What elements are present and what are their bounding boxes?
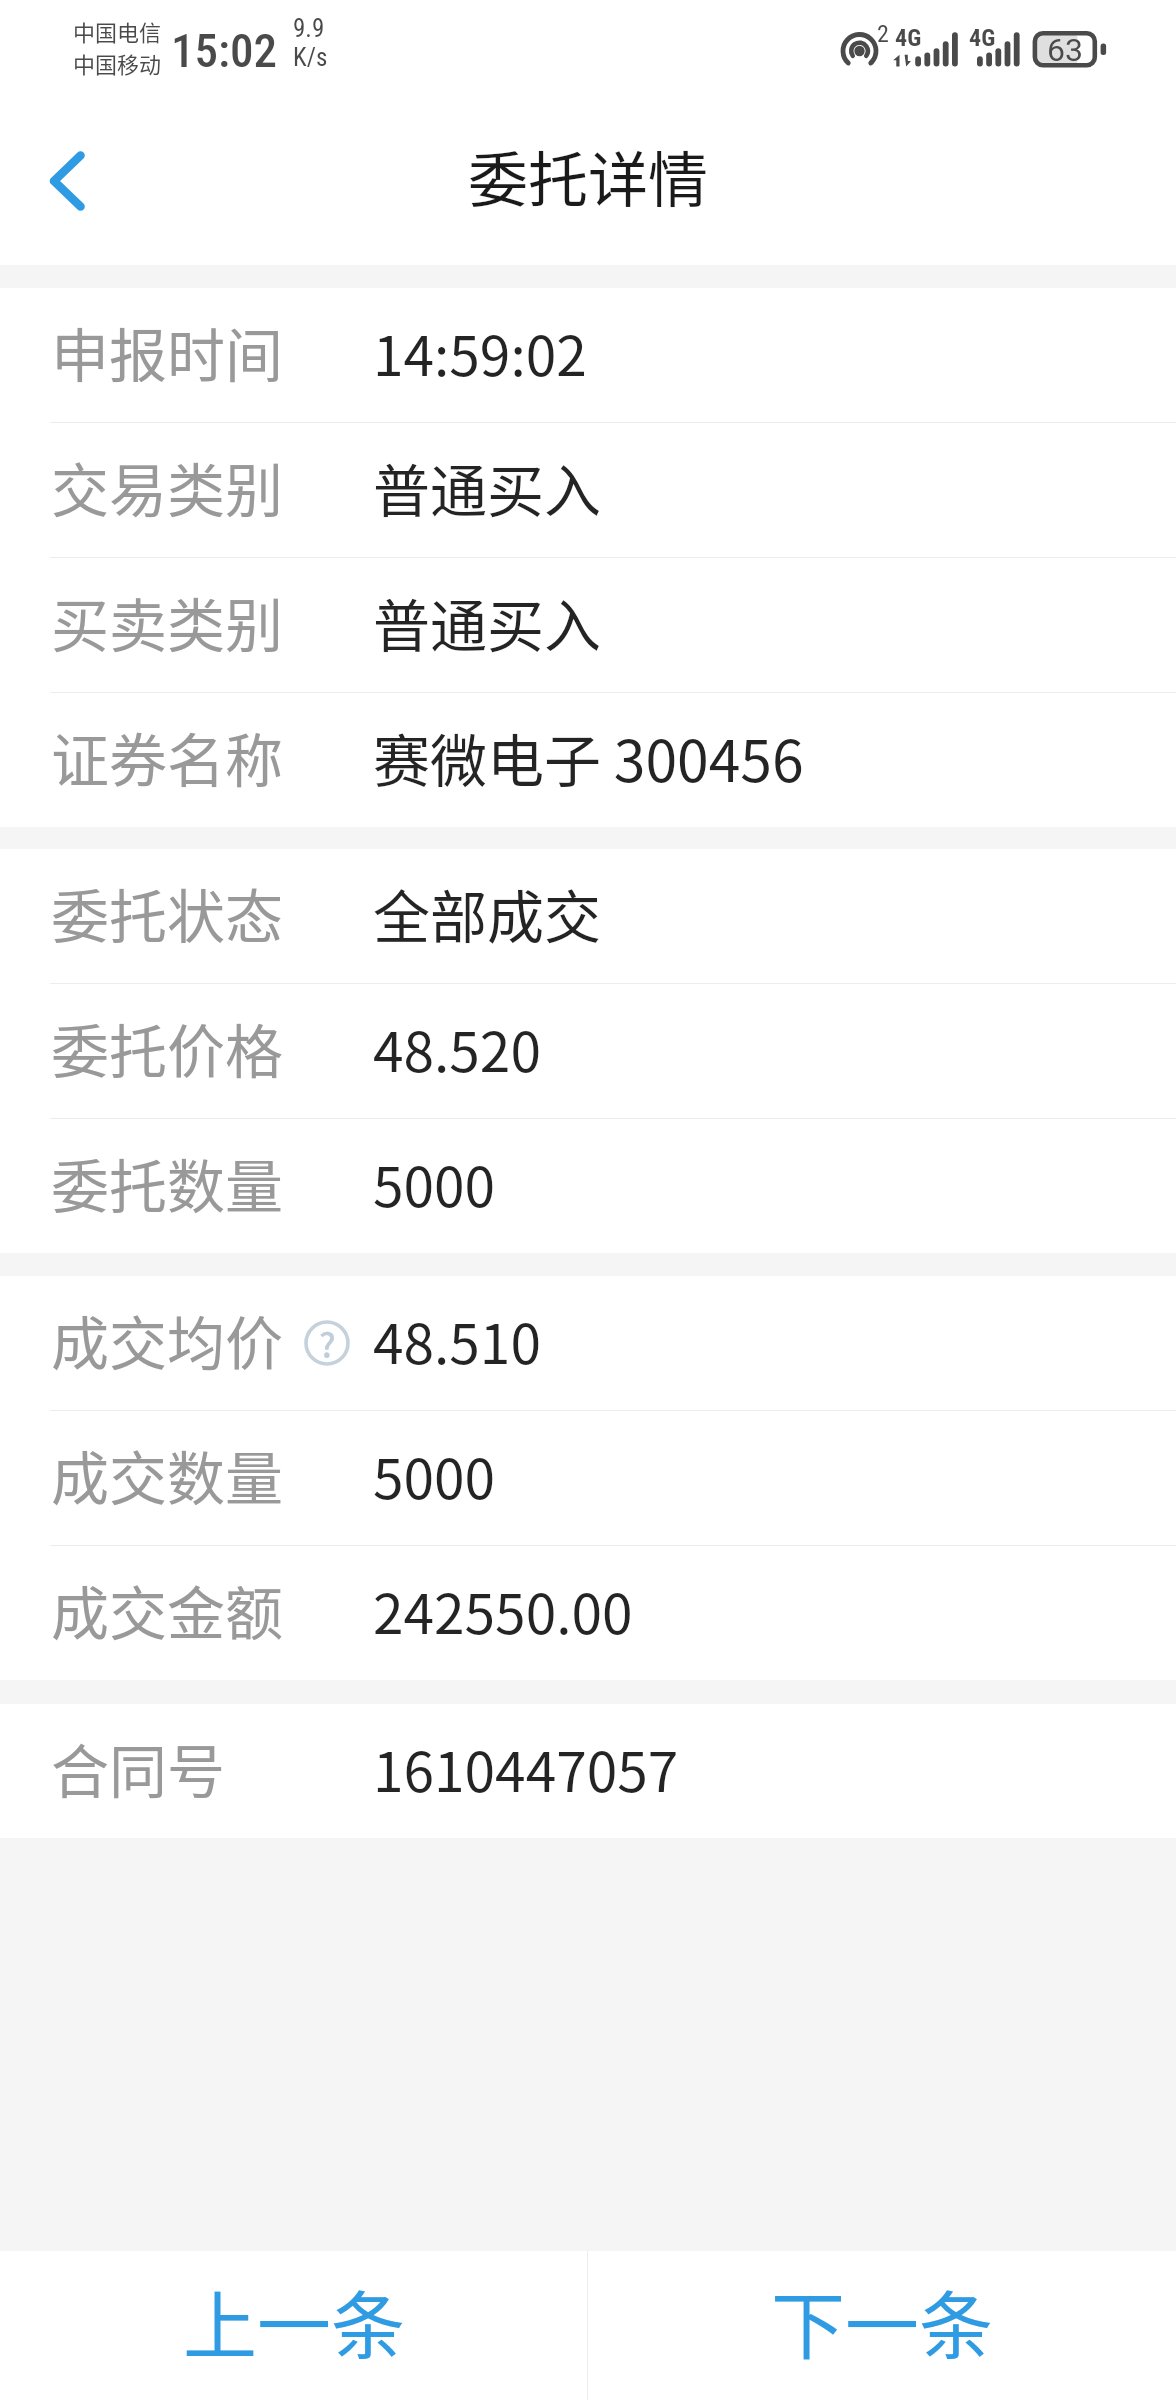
button[interactable]: Back (0, 115, 132, 249)
staticText: 成交数量 (51, 1433, 284, 1517)
button[interactable]: 申报时间 (0, 288, 1176, 422)
button[interactable]: 交易类别 (0, 423, 1176, 557)
button[interactable]: 委托价格 (0, 984, 1176, 1118)
staticText: 证券名称 (51, 715, 284, 799)
staticText: 1610447057 (373, 1728, 679, 1808)
staticText: 中国移动 (73, 47, 162, 79)
staticText: 中国电信 (73, 15, 162, 47)
staticText: 48.520 (373, 1008, 541, 1088)
staticText: 普通买入 (373, 446, 601, 529)
staticText: 买卖类别 (51, 580, 284, 664)
staticText: 2 (877, 20, 889, 48)
staticText: 5000 (373, 1435, 496, 1515)
button[interactable]: 成交均价 (0, 1276, 1176, 1410)
button[interactable]: 下一条 (588, 2251, 1176, 2400)
staticText: 4G (895, 24, 922, 52)
button[interactable]: 委托状态 (0, 849, 1176, 983)
button[interactable]: 买卖类别 (0, 558, 1176, 692)
staticText: 委托详情 (468, 132, 708, 219)
staticText: 63 (1047, 31, 1083, 68)
staticText: 全部成交 (373, 872, 601, 955)
staticText: 委托价格 (51, 1006, 284, 1090)
staticText: 合同号 (51, 1726, 226, 1810)
staticText: 上一条 (183, 2267, 405, 2374)
staticText: 委托状态 (51, 871, 284, 955)
button[interactable]: 证券名称 (0, 693, 1176, 827)
staticText: 15:02 (171, 23, 277, 78)
staticText: K/s (293, 43, 328, 72)
staticText: 赛微电子 300456 (373, 716, 804, 799)
staticText: 5000 (373, 1143, 496, 1223)
button[interactable]: 成交数量 (0, 1411, 1176, 1545)
staticText: 成交金额 (51, 1568, 284, 1652)
staticText: 48.510 (373, 1300, 541, 1380)
button[interactable]: 成交金额 (0, 1546, 1176, 1680)
staticText: 交易类别 (51, 445, 284, 529)
button[interactable]: 委托数量 (0, 1119, 1176, 1253)
staticText: 14:59:02 (373, 312, 587, 392)
staticText: 242550.00 (373, 1570, 633, 1650)
staticText: 委托数量 (51, 1141, 284, 1225)
staticText: 成交均价 (51, 1298, 284, 1382)
staticText: 申报时间 (51, 310, 284, 394)
button[interactable]: Help, average traded price (304, 1320, 350, 1366)
staticText: 4G (969, 24, 996, 52)
button[interactable]: 合同号 (0, 1704, 1176, 1838)
staticText: 普通买入 (373, 581, 601, 664)
button[interactable]: 上一条 (0, 2251, 587, 2400)
staticText: 下一条 (771, 2267, 993, 2374)
staticText: ? (319, 1319, 336, 1365)
staticText: 9.9 (293, 14, 325, 43)
